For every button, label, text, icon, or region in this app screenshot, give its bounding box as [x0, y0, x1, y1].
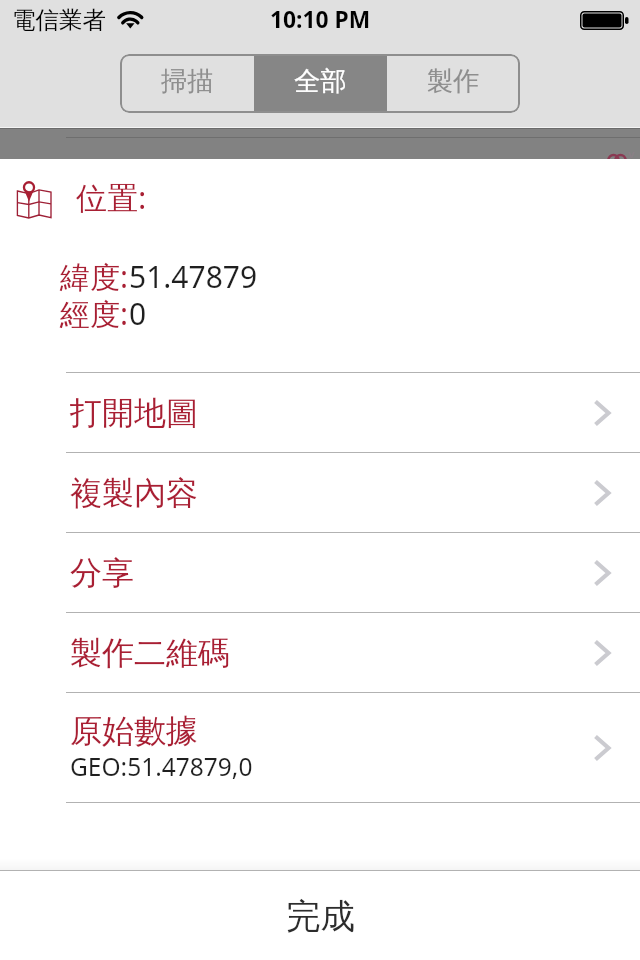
staticText: 複製內容 — [70, 473, 198, 513]
button[interactable]: 打開地圖 — [0, 373, 640, 452]
staticText: 製作 — [427, 65, 480, 98]
staticText: 全部 — [294, 65, 347, 98]
staticText: 位置: — [76, 176, 147, 218]
staticText: 原始數據 — [70, 711, 198, 751]
staticText: 10:10 PM — [270, 4, 371, 35]
button[interactable]: 複製內容 — [0, 453, 640, 532]
button[interactable]: 原始數據 — [0, 693, 640, 802]
button[interactable]: 完成 — [0, 870, 640, 960]
other: Wi-Fi signal — [117, 10, 144, 30]
staticText: GEO:51.47879,0 — [70, 750, 253, 783]
staticText: 製作二維碼 — [70, 633, 230, 673]
staticText: 分享 — [70, 553, 134, 593]
staticText: 電信業者 — [12, 5, 106, 35]
staticText: 掃描 — [161, 65, 214, 98]
staticText: 51.47879 — [129, 256, 258, 297]
staticText: 0 — [129, 293, 147, 334]
staticText: 經度: — [60, 293, 129, 334]
button[interactable]: 製作 — [387, 54, 520, 113]
other: Battery full — [580, 11, 630, 30]
button[interactable]: 全部 — [254, 54, 387, 113]
button[interactable]: 分享 — [0, 533, 640, 612]
button[interactable]: 製作二維碼 — [0, 613, 640, 692]
staticText: 打開地圖 — [70, 393, 198, 433]
button[interactable]: 掃描 — [120, 54, 254, 113]
staticText: 緯度: — [60, 256, 129, 297]
staticText: 完成 — [286, 895, 355, 938]
